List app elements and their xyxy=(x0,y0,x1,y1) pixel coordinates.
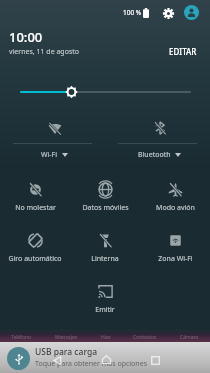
button[interactable]: User account xyxy=(184,5,199,20)
staticText: Bluetooth xyxy=(138,150,171,160)
button[interactable]: Settings xyxy=(160,5,176,21)
staticText: Teléfono xyxy=(11,334,32,341)
button[interactable]: Modo avión xyxy=(140,181,210,215)
staticText: USB para carga xyxy=(35,346,98,358)
button[interactable]: Back xyxy=(50,353,64,367)
staticText: Giro automático xyxy=(8,254,62,264)
staticText: Zona Wi-Fi xyxy=(158,254,193,264)
staticText: Emitir xyxy=(95,305,115,315)
staticText: EDITAR xyxy=(169,46,197,57)
staticText: Modo avión xyxy=(156,203,195,213)
button[interactable]: Recent apps xyxy=(148,353,162,367)
staticText: 10:00 xyxy=(9,28,43,46)
button[interactable]: Bluetooth xyxy=(105,113,210,167)
staticText: Toque para obtener más opciones xyxy=(35,359,147,369)
staticText: Mensajes xyxy=(55,334,78,341)
staticText: Wi-Fi xyxy=(41,150,58,160)
staticText: Han xyxy=(101,334,111,341)
staticText: No molestar xyxy=(15,203,56,213)
button[interactable]: Datos móviles xyxy=(70,181,140,215)
button[interactable]: Linterna xyxy=(70,232,140,266)
button[interactable]: Emitir xyxy=(70,283,140,317)
other: USB xyxy=(13,353,25,365)
button[interactable]: Wi-Fi xyxy=(0,113,105,167)
button[interactable]: Brightness xyxy=(0,80,210,104)
button[interactable]: Giro automático xyxy=(0,232,70,266)
staticText: Cámara xyxy=(180,334,199,341)
button[interactable]: Zona Wi-Fi xyxy=(140,232,210,266)
staticText: 100 % xyxy=(123,8,142,17)
button[interactable]: No molestar xyxy=(0,181,70,215)
button[interactable]: Home xyxy=(99,352,113,366)
staticText: viernes, 11 de agosto xyxy=(9,47,80,57)
staticText: Linterna xyxy=(91,254,119,264)
staticText: Datos móviles xyxy=(82,203,129,213)
staticText: Contactos xyxy=(133,334,157,341)
button[interactable]: EDITAR xyxy=(165,42,201,61)
